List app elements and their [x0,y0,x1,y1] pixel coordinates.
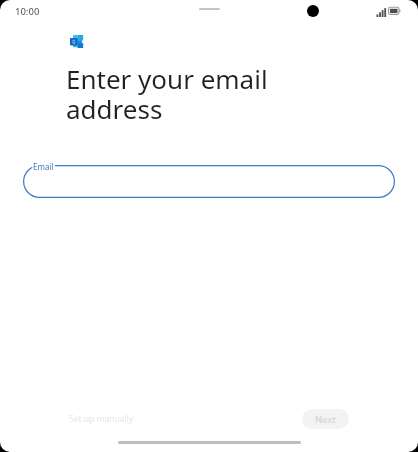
staticText: Email [33,161,54,172]
staticText: Enter your email address [66,61,268,126]
staticText: Set up manually [69,413,134,425]
staticText: Next [315,413,336,426]
button[interactable]: Set up manually [58,408,145,430]
other: Signal and battery [376,4,402,17]
button[interactable]: Next [302,409,349,429]
button[interactable]: Email [23,158,395,200]
staticText: 10:00 [15,5,40,18]
other: Outlook [70,35,84,48]
